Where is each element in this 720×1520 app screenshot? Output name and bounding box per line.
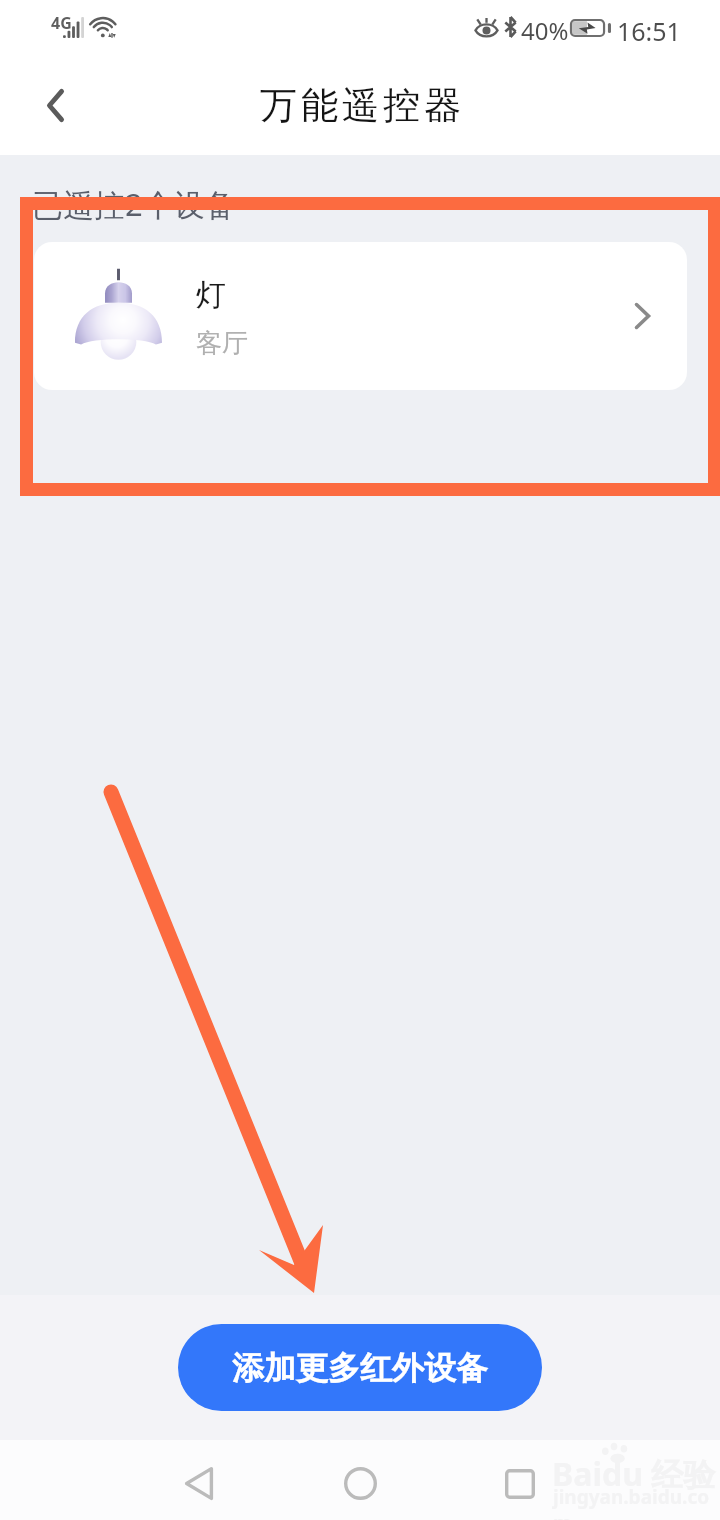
staticText: 16:51 <box>617 14 681 48</box>
staticText: 40% <box>521 14 569 47</box>
button[interactable]: Back <box>159 1443 239 1520</box>
staticText: jingyan.baidu.com <box>553 1484 720 1520</box>
button[interactable]: 灯 <box>34 242 687 390</box>
staticText: 4G <box>51 12 72 34</box>
button[interactable]: Back <box>23 73 87 137</box>
staticText: 灯 <box>196 276 226 314</box>
button[interactable]: Home <box>320 1443 400 1520</box>
staticText: 添加更多红外设备 <box>232 1348 488 1388</box>
staticText: 客厅 <box>196 327 248 360</box>
button[interactable]: Recent apps <box>480 1444 560 1520</box>
staticText: 已遥控2个设备 <box>32 183 236 225</box>
staticText: Baidu 经验 <box>552 1452 716 1496</box>
button[interactable]: 添加更多红外设备 <box>178 1324 542 1411</box>
staticText: 万能遥控器 <box>258 82 463 129</box>
